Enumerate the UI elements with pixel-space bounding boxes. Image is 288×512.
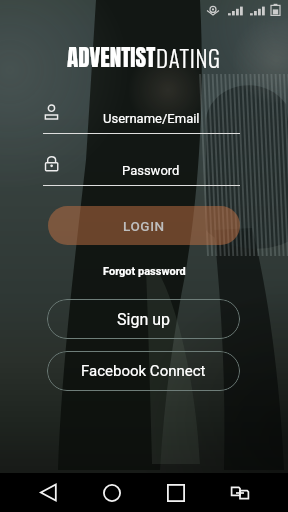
staticText: Forgot password [103, 265, 186, 278]
button[interactable]: Facebook Connect [47, 351, 240, 391]
button[interactable]: Forgot password [93, 262, 196, 281]
button[interactable]: Back [16, 473, 80, 512]
button[interactable]: Home [80, 473, 144, 512]
staticText: Facebook Connect [81, 362, 206, 380]
staticText: Username/Email [103, 111, 200, 126]
button[interactable]: Sign up [47, 299, 240, 339]
staticText: DATING [156, 41, 221, 75]
button[interactable]: Screenshot [208, 473, 272, 512]
staticText: ADVENTIST [67, 40, 156, 75]
button[interactable]: LOGIN [48, 206, 240, 245]
staticText: LOGIN [123, 218, 165, 234]
button[interactable]: Recent apps [144, 473, 208, 512]
staticText: Password [122, 163, 180, 178]
staticText: Sign up [117, 310, 170, 329]
